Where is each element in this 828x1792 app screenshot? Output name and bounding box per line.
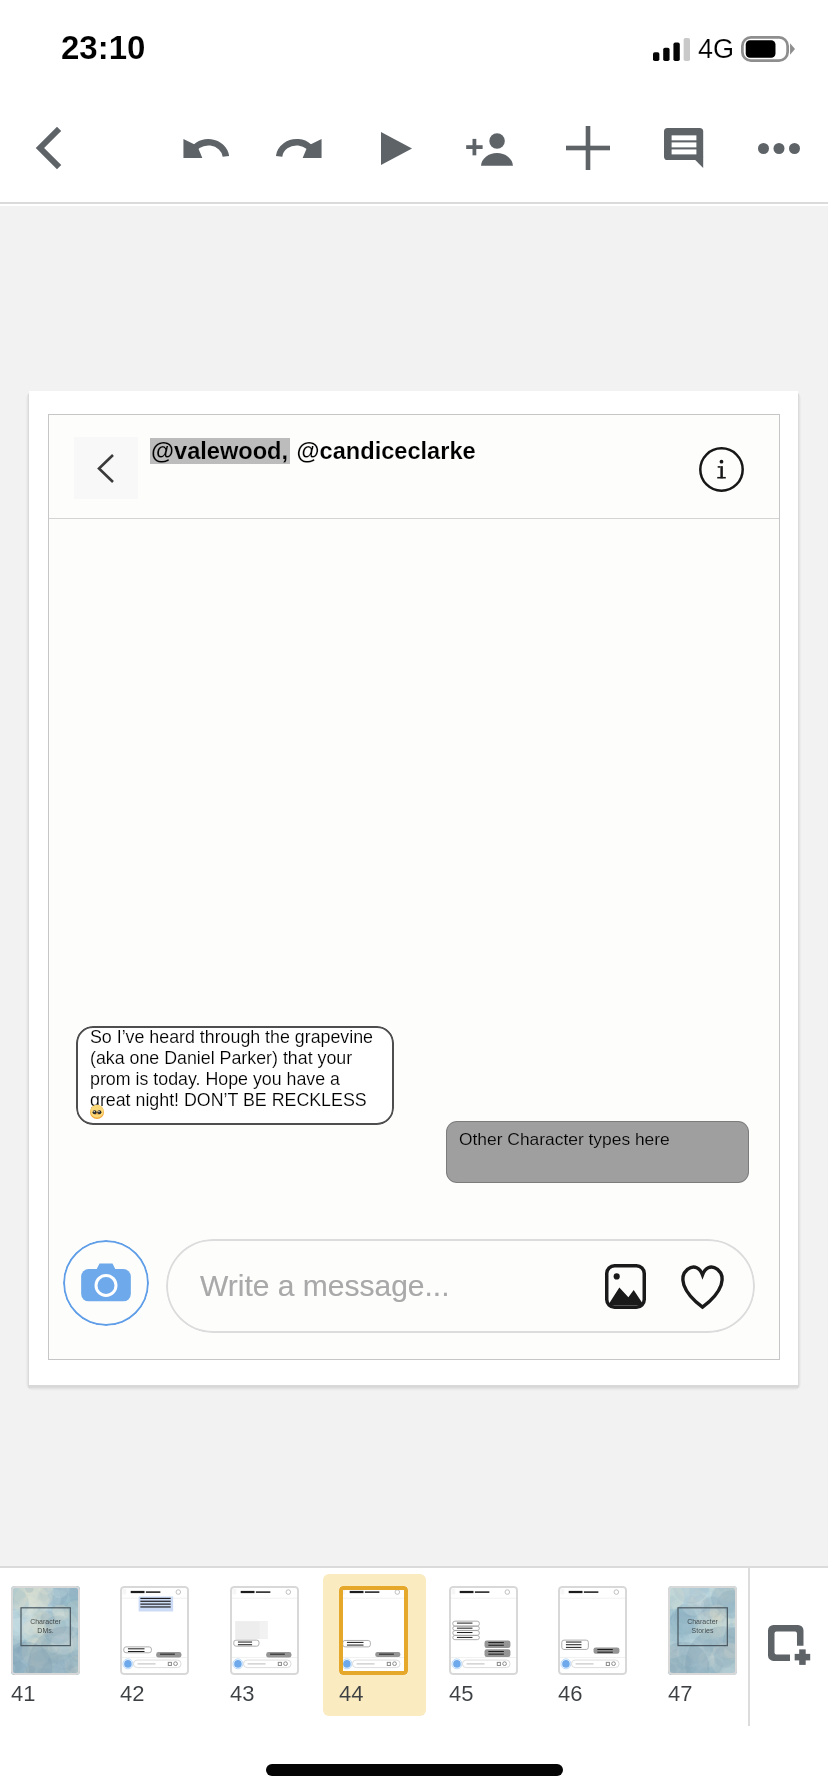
staticText: 45 [449, 1681, 474, 1706]
staticText: 44 [339, 1681, 364, 1706]
button[interactable]: 46 [542, 1574, 645, 1716]
button[interactable]: Info [693, 441, 749, 497]
staticText: Write a message... [200, 1269, 450, 1303]
staticText: 46 [558, 1681, 583, 1706]
staticText: 41 [11, 1681, 36, 1706]
button[interactable]: Redo [256, 104, 344, 192]
button[interactable]: Character Stories [652, 1574, 755, 1716]
staticText: @candiceclarke [290, 438, 476, 464]
staticText: So I’ve heard through the grapevine (aka… [90, 1027, 384, 1110]
button[interactable]: Add people [448, 104, 536, 192]
staticText: Character Stories [687, 1618, 718, 1635]
button[interactable]: Back [4, 104, 92, 192]
staticText: Character DMs. [30, 1618, 61, 1635]
button[interactable]: 44 [323, 1574, 426, 1716]
button[interactable]: 45 [433, 1574, 536, 1716]
staticText: 4G [698, 34, 735, 64]
staticText: 23:10 [61, 29, 146, 66]
button[interactable]: Photo [599, 1260, 651, 1312]
button[interactable]: 42 [104, 1574, 207, 1716]
button[interactable]: Character DMs. [0, 1574, 98, 1716]
button[interactable]: Back [74, 437, 138, 499]
button[interactable]: Write a message... [166, 1239, 755, 1333]
button[interactable]: 43 [214, 1574, 317, 1716]
button[interactable]: Like [676, 1260, 728, 1312]
staticText: Other Character types here [459, 1129, 670, 1148]
button[interactable]: Comments [640, 104, 728, 192]
button[interactable]: New slide [749, 1576, 828, 1716]
staticText: 42 [120, 1681, 145, 1706]
staticText: @valewood, [151, 438, 289, 464]
button[interactable]: Back [29, 391, 798, 1385]
button[interactable]: Insert [544, 104, 632, 192]
button[interactable]: More options [735, 104, 823, 192]
button[interactable]: Camera [63, 1240, 149, 1326]
staticText: 43 [230, 1681, 255, 1706]
staticText: 47 [668, 1681, 693, 1706]
button[interactable]: Present [352, 104, 440, 192]
button[interactable]: Undo [160, 104, 248, 192]
